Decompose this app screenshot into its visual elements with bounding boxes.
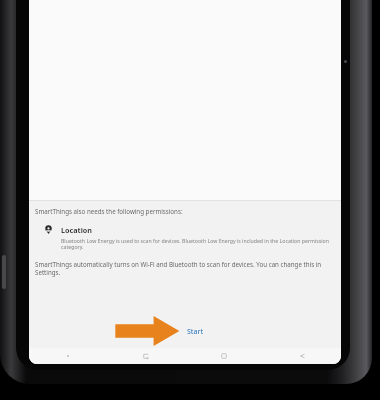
button[interactable]: Start bbox=[179, 321, 212, 343]
staticText: Bluetooth Low Energy is used to scan for… bbox=[61, 237, 333, 251]
staticText: SmartThings automatically turns on Wi-Fi… bbox=[35, 260, 335, 276]
staticText: SmartThings also needs the following per… bbox=[35, 207, 183, 215]
button[interactable]: Home bbox=[185, 348, 263, 364]
staticText: Location bbox=[61, 225, 92, 235]
button[interactable]: Recent apps bbox=[107, 348, 185, 364]
button[interactable]: Keyboard bbox=[29, 348, 107, 364]
button[interactable]: Back bbox=[263, 348, 341, 364]
button[interactable]: Location bbox=[29, 225, 341, 251]
other: Arrow pointing to Start bbox=[114, 314, 180, 348]
staticText: Start bbox=[187, 327, 204, 337]
other: Location bbox=[35, 225, 61, 249]
